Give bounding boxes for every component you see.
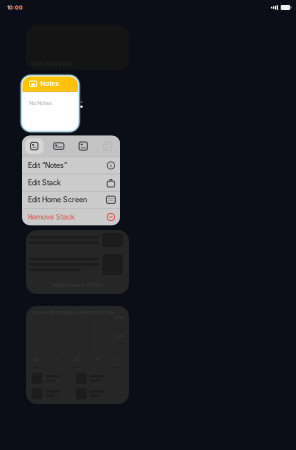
button[interactable]: Small widget (22, 136, 46, 156)
button[interactable]: Medium widget (46, 136, 71, 156)
staticText: T (117, 357, 119, 362)
staticText: 0 (121, 352, 124, 357)
staticText: 10:00 (7, 4, 23, 11)
staticText: 20m (115, 334, 124, 339)
button[interactable]: Edit “Notes” (22, 157, 120, 174)
staticText: TU (74, 357, 79, 362)
staticText: 40m (114, 315, 124, 320)
staticText: No Notes (29, 100, 52, 106)
staticText: Edit Home Screen (28, 195, 87, 204)
staticText: SU (33, 357, 38, 362)
button[interactable]: Extra large widget (95, 136, 120, 156)
staticText: Remove Stack (28, 213, 75, 221)
staticText: Time on Apps & Websites Activity in Scre… (31, 310, 113, 315)
staticText: Edit Stack (28, 178, 61, 187)
staticText: M (55, 357, 58, 362)
button[interactable]: Edit Home Screen (22, 191, 120, 208)
staticText: W (96, 357, 100, 362)
staticText: Notes (40, 80, 59, 87)
button[interactable]: Large widget (71, 136, 95, 156)
button[interactable]: Edit Stack (22, 174, 120, 191)
staticText: Apple News is Offline (52, 282, 102, 288)
button[interactable]: Remove Stack (22, 209, 120, 225)
staticText: No photos available (30, 61, 73, 66)
staticText: Edit “Notes” (28, 161, 67, 170)
